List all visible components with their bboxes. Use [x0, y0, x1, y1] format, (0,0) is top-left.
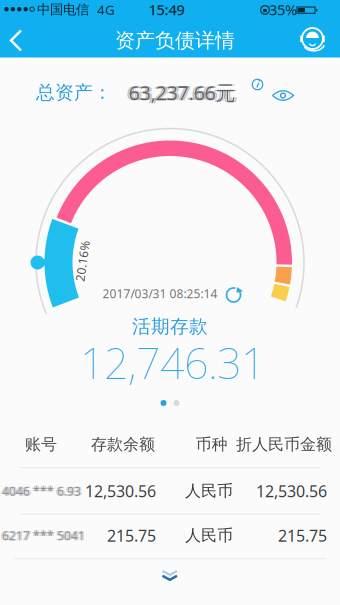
staticText: 账号 — [25, 435, 57, 454]
staticText: 4046 *** 6.93 — [2, 483, 81, 499]
staticText: 12,530.56 — [256, 480, 327, 502]
staticText: 折人民币金额 — [236, 435, 332, 454]
staticText: 35% — [269, 0, 297, 19]
staticText: 4G — [97, 1, 115, 18]
button[interactable] — [155, 567, 185, 583]
staticText: 215.75 — [107, 525, 156, 546]
button[interactable] — [249, 76, 265, 92]
staticText: 资产负债详情 — [115, 28, 235, 53]
staticText: 人民币 — [185, 526, 233, 545]
button[interactable] — [295, 21, 329, 55]
staticText: 12,746.31 — [80, 334, 265, 391]
staticText: 12,530.56 — [85, 480, 156, 502]
button[interactable]: 4046 *** 6.93 — [0, 445, 340, 537]
staticText: 总资产： — [36, 81, 112, 104]
button[interactable] — [222, 284, 244, 306]
button[interactable]: 6217 *** 5041 — [0, 513, 340, 557]
staticText: 63,237.66元 — [131, 79, 238, 106]
staticText: 6217 *** 5041 — [1, 527, 84, 543]
staticText: 20.16% — [62, 253, 103, 269]
staticText: 币种 — [195, 435, 227, 454]
staticText: 6217 *** 5041 — [3, 527, 86, 543]
staticText: 人民币 — [185, 481, 233, 501]
staticText: 存款余额 — [91, 435, 155, 454]
staticText: 6217 *** 5041 — [2, 527, 85, 543]
staticText: 215.75 — [278, 525, 327, 546]
button[interactable] — [4, 26, 30, 54]
staticText: 63,237.66元 — [126, 79, 233, 106]
staticText: 15:49 — [148, 0, 184, 19]
staticText: 4046 *** 6.93 — [1, 483, 80, 499]
button[interactable] — [271, 88, 294, 102]
staticText: 中国电信 — [37, 1, 89, 18]
staticText: 2017/03/31 08:25:14 — [102, 285, 217, 301]
staticText: 活期存款 — [132, 315, 208, 338]
staticText: 63,237.66元 — [128, 79, 235, 106]
staticText: 4046 *** 6.93 — [3, 483, 82, 499]
